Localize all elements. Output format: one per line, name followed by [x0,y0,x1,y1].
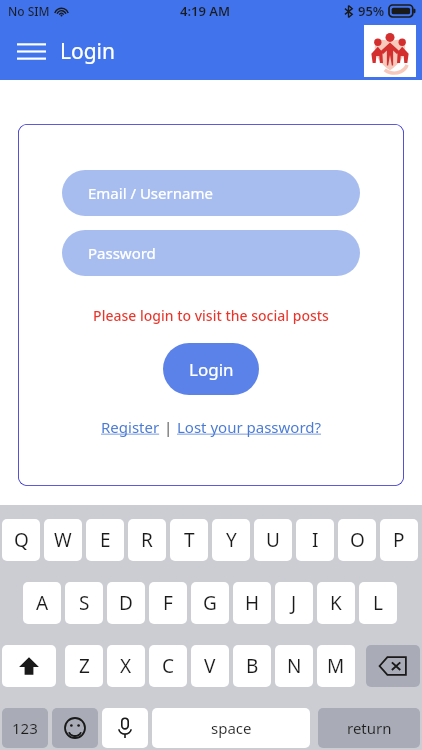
button[interactable]: Shift [2,645,56,687]
staticText: 123 [12,718,38,738]
staticText: P [393,527,405,553]
button[interactable]: Numbers [2,708,48,748]
staticText: G [203,590,217,616]
button[interactable]: T [170,519,208,561]
staticText: M [327,653,345,679]
button[interactable]: Dictation [102,708,148,748]
button[interactable]: D [107,582,145,624]
button[interactable]: L [359,582,397,624]
button[interactable]: App logo [364,25,416,77]
button[interactable]: G [191,582,229,624]
button[interactable]: Open navigation menu [8,28,54,74]
staticText: L [373,590,383,616]
button[interactable]: C [149,645,187,687]
button[interactable]: K [317,582,355,624]
staticText: C [162,653,175,679]
button[interactable]: E [86,519,124,561]
staticText: | [160,417,177,437]
staticText: Q [14,527,29,553]
button[interactable]: I [296,519,334,561]
button[interactable]: W [44,519,82,561]
button[interactable]: Register [101,417,160,437]
staticText: Login [60,37,116,66]
staticText: Register [101,417,160,437]
staticText: 95% [358,2,385,20]
button[interactable]: Q [2,519,40,561]
button[interactable]: P [380,519,418,561]
button[interactable]: Login [163,343,259,395]
staticText: B [246,653,259,679]
staticText: return [347,718,392,738]
button[interactable]: M [317,645,355,687]
button[interactable]: V [191,645,229,687]
staticText: Password [88,243,156,263]
button[interactable]: Delete [366,645,420,687]
button[interactable]: X [107,645,145,687]
button[interactable]: Lost your password? [177,417,322,437]
button[interactable]: S [65,582,103,624]
staticText: Lost your password? [177,417,322,437]
staticText: R [141,527,153,553]
staticText: Z [79,653,90,679]
staticText: space [211,718,252,738]
staticText: A [36,590,49,616]
button[interactable]: Z [65,645,103,687]
staticText: 4:19 AM [180,2,231,20]
staticText: Login [189,358,234,381]
button[interactable]: Y [212,519,250,561]
staticText: Y [226,527,237,553]
staticText: I [312,527,319,553]
button[interactable]: H [233,582,271,624]
button[interactable]: space [152,708,310,748]
staticText: V [204,653,216,679]
staticText: Please login to visit the social posts [93,306,329,325]
button[interactable]: B [233,645,271,687]
button[interactable]: F [149,582,187,624]
staticText: F [163,590,173,616]
staticText: K [330,590,342,616]
staticText: J [291,590,297,616]
staticText: D [119,590,133,616]
staticText: S [79,590,90,616]
button[interactable]: Password [62,230,360,276]
staticText: W [54,527,72,553]
staticText: E [100,527,111,553]
button[interactable]: A [23,582,61,624]
staticText: O [350,527,365,553]
staticText: No SIM [8,3,50,19]
button[interactable]: J [275,582,313,624]
staticText: N [287,653,302,679]
button[interactable]: U [254,519,292,561]
button[interactable]: return [318,708,420,748]
staticText: T [184,527,195,553]
button[interactable]: R [128,519,166,561]
button[interactable]: Email / Username [62,170,360,216]
button[interactable]: O [338,519,376,561]
button[interactable]: N [275,645,313,687]
button[interactable]: Emoji [52,708,98,748]
staticText: Email / Username [88,183,213,203]
staticText: X [120,653,132,679]
staticText: U [266,527,280,553]
staticText: H [245,590,260,616]
